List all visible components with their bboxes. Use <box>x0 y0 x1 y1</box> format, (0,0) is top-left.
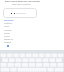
staticText: with alert e support <box>12 3 31 6</box>
staticText: Reminder <box>4 19 14 22</box>
button[interactable] <box>0 50 64 72</box>
staticText: Settings <box>4 41 12 44</box>
staticText: Calendar <box>4 22 12 25</box>
button[interactable]: Notes <box>4 25 10 28</box>
button[interactable]: Attach <box>4 35 10 38</box>
button[interactable]: Guests <box>4 32 11 35</box>
staticText: Repeat all <box>4 38 13 41</box>
button[interactable]: Repeat all <box>4 38 13 41</box>
button[interactable]: Calendar <box>4 22 12 25</box>
button[interactable] <box>3 8 37 18</box>
staticText: Notes <box>4 25 10 28</box>
button[interactable]: End of term exam for your dental <box>5 0 40 3</box>
staticText: End of term exam for your dental <box>5 0 40 3</box>
button[interactable]: Reminder <box>4 19 14 22</box>
button[interactable]: Location <box>4 29 12 32</box>
button[interactable]: Settings <box>4 41 12 44</box>
button[interactable]: with alert e support <box>12 3 31 6</box>
staticText: Attach <box>4 35 10 38</box>
staticText: Location <box>4 29 12 32</box>
staticText: Guests <box>4 32 11 35</box>
